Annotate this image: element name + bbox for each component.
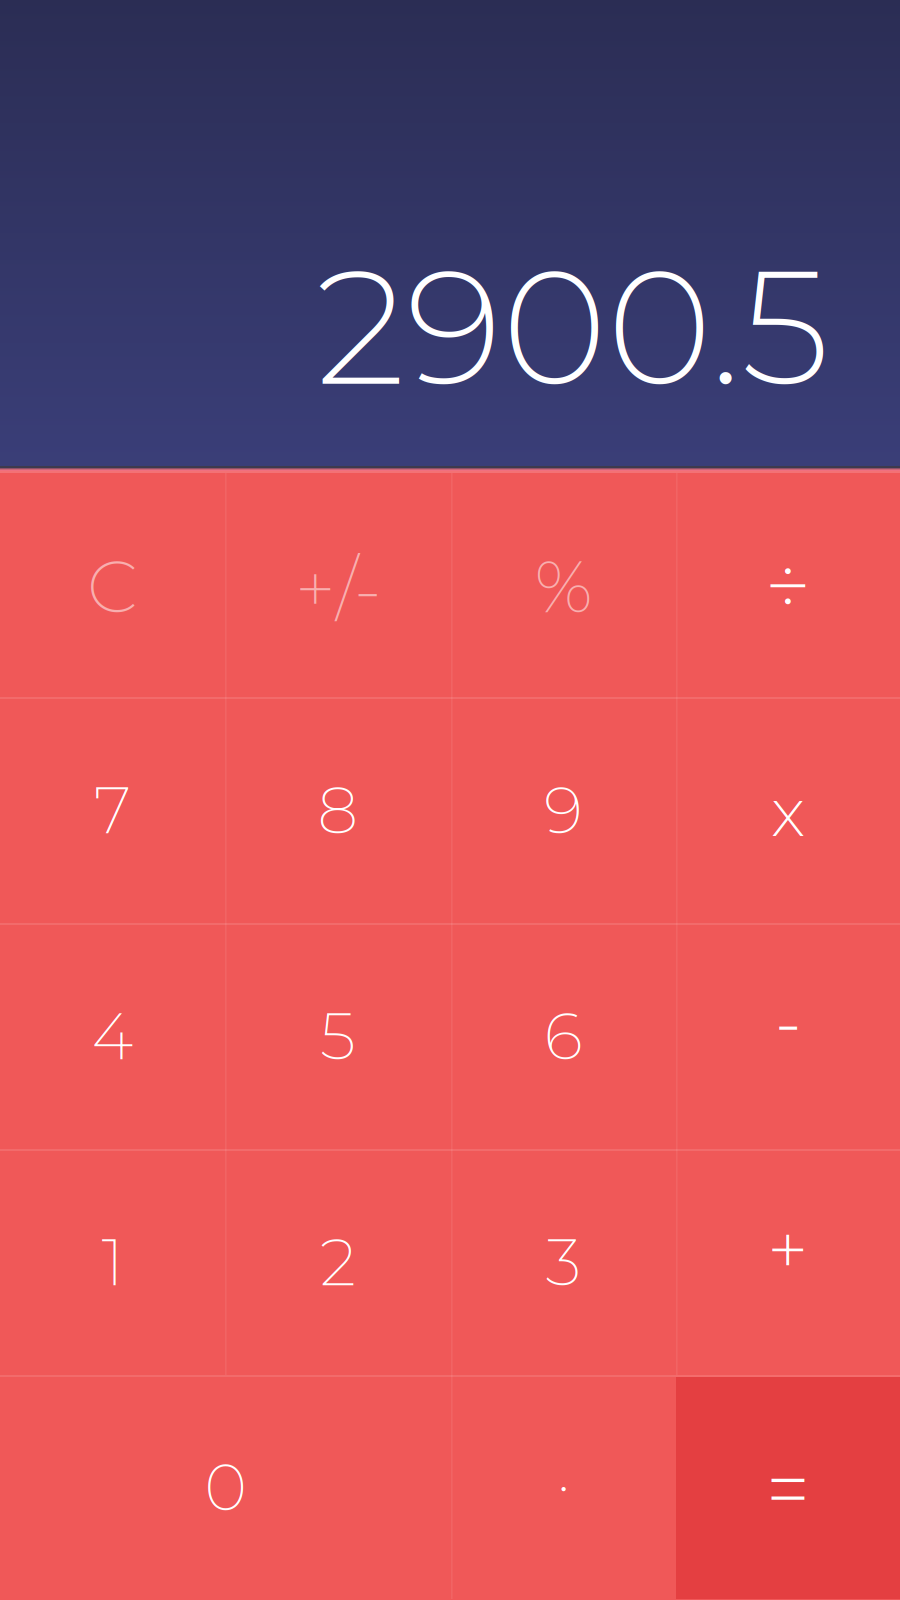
button[interactable]: Zero <box>0 1375 451 1599</box>
staticText: +/- <box>295 545 381 632</box>
staticText: = <box>766 1442 810 1536</box>
staticText: x <box>771 771 805 853</box>
staticText: 8 <box>317 771 358 849</box>
staticText: . <box>557 1429 569 1507</box>
staticText: 9 <box>544 771 583 849</box>
button[interactable]: Four <box>0 923 225 1149</box>
staticText: + <box>767 1205 809 1295</box>
button[interactable]: Clear <box>0 466 225 697</box>
button[interactable]: Minus <box>676 923 900 1149</box>
button[interactable]: Three <box>451 1149 676 1375</box>
staticText: 6 <box>544 997 583 1075</box>
staticText: 0 <box>204 1448 246 1526</box>
staticText: 3 <box>545 1223 581 1301</box>
staticText: 1 <box>101 1223 123 1301</box>
button[interactable]: Equals <box>676 1375 900 1599</box>
button[interactable]: Divide <box>676 466 900 697</box>
staticText: 4 <box>91 997 133 1075</box>
staticText: - <box>775 980 801 1064</box>
button[interactable]: Eight <box>225 697 451 923</box>
button[interactable]: Six <box>451 923 676 1149</box>
button[interactable]: Decimal point <box>451 1375 676 1599</box>
button[interactable]: Percent <box>451 466 676 697</box>
button[interactable]: Five <box>225 923 451 1149</box>
button[interactable]: Seven <box>0 697 225 923</box>
button[interactable]: Plus minus <box>225 466 451 697</box>
staticText: 2 <box>320 1223 356 1301</box>
button[interactable]: Nine <box>451 697 676 923</box>
button[interactable]: Multiply <box>676 697 900 923</box>
staticText: 5 <box>320 997 356 1075</box>
button[interactable]: Plus <box>676 1149 900 1375</box>
staticText: 7 <box>94 771 131 849</box>
button[interactable]: One <box>0 1149 225 1375</box>
staticText: C <box>87 543 138 630</box>
button[interactable]: Two <box>225 1149 451 1375</box>
staticText: % <box>534 543 592 630</box>
staticText: 2900.5 <box>316 229 830 424</box>
staticText: ÷ <box>764 535 811 636</box>
